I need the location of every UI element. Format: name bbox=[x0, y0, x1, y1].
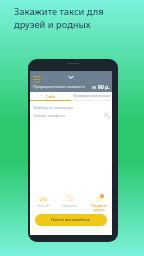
button[interactable]: Такси БП bbox=[33, 194, 53, 208]
button[interactable]: Menu bbox=[32, 74, 43, 85]
staticText: Такси БП bbox=[37, 204, 50, 208]
button[interactable]: Expand bbox=[66, 72, 76, 82]
staticText: ≈ 90 р. bbox=[92, 83, 110, 90]
button[interactable]: Choose from contacts bbox=[103, 112, 111, 120]
button[interactable]: Найти автомобиль bbox=[35, 214, 107, 226]
staticText: друзей и родных bbox=[14, 18, 91, 31]
staticText: Предварительная стоимость bbox=[33, 84, 85, 89]
button[interactable]: Поездка за другого bbox=[89, 194, 109, 211]
staticText: Себе bbox=[46, 94, 55, 99]
staticText: Поездка за другого bbox=[91, 204, 107, 211]
staticText: Предварительный заказ bbox=[73, 94, 111, 98]
staticText: Номер телефона bbox=[34, 113, 66, 118]
staticText: Найти автомобиль bbox=[51, 217, 91, 223]
button[interactable]: Наличные bbox=[59, 194, 79, 208]
staticText: Выберите пассажира bbox=[34, 105, 73, 110]
button[interactable]: Себе bbox=[30, 92, 71, 100]
staticText: Наличные bbox=[62, 204, 77, 208]
button[interactable]: Предварительный заказ bbox=[71, 92, 112, 100]
staticText: Закажите такси для bbox=[14, 5, 104, 18]
